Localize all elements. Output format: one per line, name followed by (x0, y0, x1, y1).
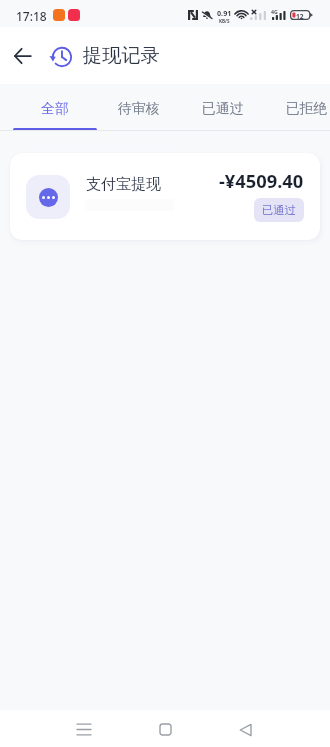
staticText: 已通过 (202, 100, 244, 117)
staticText: KB/S (219, 18, 230, 24)
button[interactable]: Back (0, 27, 44, 84)
staticText: 支付宝提现 (86, 175, 161, 194)
staticText: 4G (271, 8, 278, 15)
button[interactable]: 全部 (13, 84, 97, 131)
staticText: 提现记录 (83, 44, 160, 68)
staticText: 待审核 (118, 100, 160, 117)
button[interactable]: Home (143, 710, 187, 747)
button[interactable]: Recent apps (62, 710, 106, 747)
button[interactable]: 支付宝提现 (10, 153, 320, 240)
staticText: 已通过 (262, 203, 296, 217)
button[interactable]: Back (223, 710, 267, 747)
button[interactable]: 已通过 (181, 84, 265, 131)
staticText: 17:18 (16, 8, 47, 24)
button[interactable]: 已拒绝 (265, 84, 330, 131)
staticText: 0.91 (217, 8, 232, 18)
staticText: 全部 (41, 100, 69, 117)
staticText: 已拒绝 (286, 100, 328, 117)
staticText: -¥4509.40 (219, 168, 304, 193)
button[interactable]: 待审核 (97, 84, 181, 131)
staticText: 12 (296, 12, 304, 21)
